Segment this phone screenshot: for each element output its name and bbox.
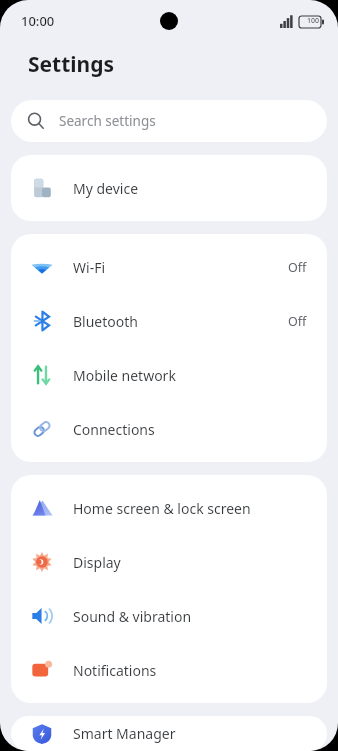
staticText: Off [288,313,307,330]
button[interactable]: Search settings [11,100,327,142]
button[interactable]: Mobile network [11,348,327,402]
staticText: Bluetooth [73,312,288,331]
button[interactable]: Sound & vibration [11,589,327,643]
staticText: Home screen & lock screen [73,499,307,518]
staticText: 100 [307,16,320,26]
staticText: Settings [28,50,115,79]
staticText: Sound & vibration [73,607,307,626]
staticText: Smart Manager [73,724,307,743]
button[interactable]: Bluetooth [11,294,327,348]
button[interactable]: Display [11,535,327,589]
staticText: Notifications [73,661,307,680]
staticText: Display [73,553,307,572]
staticText: My device [73,179,307,198]
button[interactable]: Connections [11,402,327,456]
staticText: Off [288,259,307,276]
button[interactable]: Smart Manager [11,722,327,745]
staticText: 10:00 [21,12,55,30]
button[interactable]: My device [11,161,327,215]
staticText: Search settings [59,112,156,130]
button[interactable]: Notifications [11,643,327,697]
staticText: Connections [73,420,307,439]
button[interactable]: Wi-Fi [11,240,327,294]
staticText: Mobile network [73,366,307,385]
staticText: Wi-Fi [73,258,288,277]
button[interactable]: Home screen & lock screen [11,481,327,535]
